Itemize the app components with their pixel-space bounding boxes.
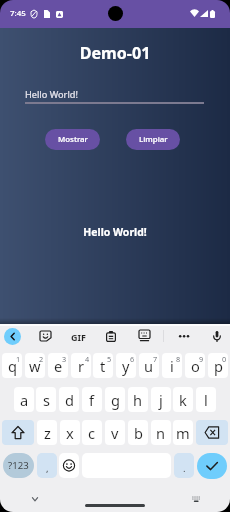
- staticText: d: [65, 390, 74, 410]
- button[interactable]: n: [151, 420, 171, 445]
- staticText: a: [20, 390, 29, 410]
- staticText: 1: [16, 354, 21, 364]
- button[interactable]: f: [82, 387, 102, 412]
- button[interactable]: Backspace: [196, 420, 228, 445]
- staticText: r: [78, 356, 85, 376]
- button[interactable]: e: [48, 353, 68, 378]
- button[interactable]: u: [139, 353, 159, 378]
- button[interactable]: p: [208, 353, 228, 378]
- button[interactable]: d: [59, 387, 79, 412]
- staticText: s: [43, 390, 50, 410]
- other: Change keyboard: [192, 496, 200, 502]
- staticText: 6: [130, 354, 135, 364]
- button[interactable]: l: [196, 387, 216, 412]
- other: Keyboard modes: [139, 330, 150, 341]
- button[interactable]: Mostrar: [45, 129, 100, 150]
- button[interactable]: t: [93, 353, 113, 378]
- staticText: 5: [107, 354, 112, 364]
- button[interactable]: y: [116, 353, 136, 378]
- staticText: n: [156, 423, 166, 443]
- other: Voice input: [213, 331, 221, 342]
- staticText: y: [122, 356, 130, 376]
- staticText: g: [111, 390, 120, 410]
- button[interactable]: m: [173, 420, 193, 445]
- staticText: 2: [39, 354, 44, 364]
- staticText: 0: [222, 354, 227, 364]
- button[interactable]: ?123: [3, 453, 34, 478]
- button[interactable]: ,: [37, 453, 57, 478]
- staticText: u: [144, 356, 154, 376]
- staticText: 4: [85, 354, 90, 364]
- button[interactable]: j: [151, 387, 171, 412]
- staticText: h: [133, 390, 143, 410]
- staticText: p: [214, 356, 223, 376]
- button[interactable]: s: [36, 387, 56, 412]
- staticText: z: [44, 423, 51, 443]
- staticText: .: [183, 462, 186, 475]
- staticText: Demo-01: [0, 42, 230, 64]
- staticText: Hello World!: [25, 88, 78, 101]
- button[interactable]: i: [162, 353, 182, 378]
- button[interactable]: r: [71, 353, 91, 378]
- staticText: o: [191, 356, 200, 376]
- staticText: l: [204, 390, 208, 410]
- button[interactable]: x: [60, 420, 80, 445]
- other: Stickers: [40, 331, 51, 341]
- button[interactable]: Enter: [197, 453, 227, 479]
- staticText: Limpiar: [139, 134, 168, 145]
- button[interactable]: .: [174, 453, 194, 478]
- button[interactable]: b: [128, 420, 148, 445]
- staticText: Mostrar: [58, 134, 88, 145]
- button[interactable]: k: [173, 387, 193, 412]
- staticText: ,: [46, 462, 49, 475]
- button[interactable]: q: [2, 353, 22, 378]
- staticText: 9: [199, 354, 204, 364]
- staticText: f: [89, 390, 95, 410]
- staticText: b: [134, 423, 143, 443]
- button[interactable]: h: [128, 387, 148, 412]
- button[interactable]: o: [185, 353, 205, 378]
- staticText: j: [159, 390, 163, 410]
- button[interactable]: v: [105, 420, 125, 445]
- staticText: c: [88, 423, 96, 443]
- staticText: 8: [176, 354, 181, 364]
- staticText: q: [8, 356, 17, 376]
- other: Hide keyboard: [32, 497, 38, 501]
- staticText: e: [54, 356, 63, 376]
- staticText: Hello World!: [0, 225, 230, 239]
- staticText: v: [111, 423, 119, 443]
- staticText: 7:45: [10, 8, 26, 19]
- staticText: 3: [62, 354, 67, 364]
- button[interactable]: Emoji: [59, 453, 79, 478]
- staticText: ?123: [8, 459, 29, 472]
- button[interactable]: z: [37, 420, 57, 445]
- button[interactable]: g: [105, 387, 125, 412]
- staticText: m: [176, 423, 190, 443]
- staticText: x: [66, 423, 74, 443]
- button[interactable]: Shift: [2, 420, 34, 445]
- button[interactable]: w: [25, 353, 45, 378]
- staticText: i: [170, 356, 174, 376]
- button[interactable]: Back: [4, 328, 21, 345]
- staticText: t: [100, 356, 106, 376]
- button[interactable]: c: [82, 420, 102, 445]
- button[interactable]: a: [14, 387, 34, 412]
- staticText: k: [179, 390, 187, 410]
- staticText: w: [29, 356, 41, 376]
- button[interactable]: Limpiar: [126, 129, 180, 150]
- staticText: 7: [153, 354, 158, 364]
- other: More options: [178, 334, 190, 338]
- staticText: GIF: [71, 331, 86, 343]
- other: Clipboard: [106, 331, 116, 342]
